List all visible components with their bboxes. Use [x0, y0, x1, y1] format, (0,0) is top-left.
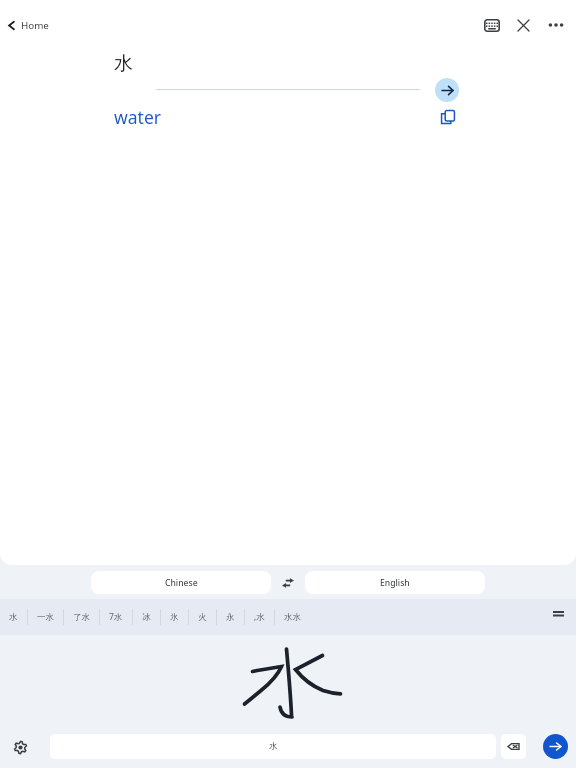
button[interactable]: Handwriting input area — [0, 635, 576, 726]
button[interactable]: Backspace — [501, 734, 526, 759]
button[interactable]: Enter — [543, 734, 568, 759]
button[interactable]: Keyboard — [476, 9, 508, 41]
button[interactable]: 火 — [189, 606, 216, 629]
button[interactable]: 水 — [50, 734, 496, 759]
button[interactable]: ,水 — [245, 605, 274, 629]
button[interactable]: Expand suggestions — [548, 604, 568, 624]
staticText: Chinese — [165, 577, 198, 589]
button[interactable]: 一水 — [28, 606, 63, 629]
staticText: 水 — [9, 612, 18, 623]
staticText: 一水 — [37, 612, 54, 623]
button[interactable]: Translate — [435, 78, 459, 102]
staticText: 7水 — [109, 611, 123, 623]
button[interactable]: Home — [2, 13, 53, 38]
staticText: 水水 — [284, 612, 301, 623]
button[interactable]: More options — [540, 9, 572, 41]
staticText: ,水 — [254, 611, 265, 623]
staticText: 水 — [269, 741, 278, 752]
button[interactable]: 水水 — [275, 606, 310, 629]
staticText: water — [114, 105, 161, 129]
staticText: 了水 — [73, 612, 90, 623]
button[interactable]: Copy — [437, 106, 459, 128]
staticText: 氷 — [170, 612, 179, 623]
button[interactable]: 氷 — [161, 606, 188, 629]
staticText: 永 — [226, 612, 235, 623]
button[interactable]: 7水 — [100, 605, 132, 629]
staticText: 水 — [114, 52, 133, 76]
button[interactable]: Chinese — [91, 571, 271, 594]
button[interactable]: Swap languages — [277, 571, 299, 594]
staticText: English — [380, 577, 410, 589]
staticText: Home — [21, 19, 49, 32]
button[interactable]: 水 — [0, 606, 27, 629]
button[interactable]: 冰 — [133, 606, 160, 629]
button[interactable]: Close — [507, 9, 539, 41]
staticText: 冰 — [142, 612, 151, 623]
button[interactable]: English — [305, 571, 485, 594]
button[interactable]: 永 — [217, 606, 244, 629]
button[interactable]: Settings — [8, 735, 32, 759]
button[interactable]: 了水 — [64, 606, 99, 629]
staticText: 火 — [198, 612, 207, 623]
